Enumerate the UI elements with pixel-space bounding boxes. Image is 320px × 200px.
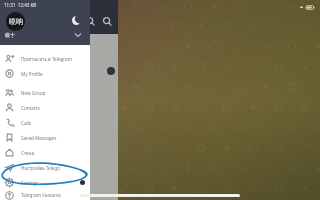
button[interactable]: Calls	[0, 115, 90, 130]
button[interactable]: Saved Messages	[0, 130, 90, 145]
staticText: 喨呐	[9, 17, 23, 26]
staticText: My Profile	[21, 71, 43, 77]
button[interactable]: Settings	[0, 175, 90, 190]
button[interactable]: My Profile	[0, 66, 90, 81]
button[interactable]: New message	[2, 156, 28, 182]
button[interactable]: Profile photo	[6, 12, 25, 31]
button[interactable]: Contacts	[0, 100, 90, 115]
staticText: Saved Messages	[21, 135, 57, 141]
staticText: 11:31 12:43 KB	[4, 2, 37, 8]
button[interactable]: Telegram Features	[0, 190, 90, 200]
staticText: Telegram Features	[21, 192, 61, 198]
button[interactable]: Настройка Telego	[0, 160, 90, 175]
staticText: Настройка Telego	[21, 165, 61, 171]
button[interactable]: Стена	[0, 145, 90, 160]
button[interactable]: Expand accounts	[71, 28, 85, 42]
staticText: 喨十	[5, 32, 15, 38]
staticText: Settings	[21, 180, 39, 186]
staticText: Calls	[21, 120, 32, 126]
button[interactable]: New Group	[0, 85, 90, 100]
staticText: Contacts	[21, 105, 40, 111]
button[interactable]: Пригласить в Telegram	[0, 51, 90, 66]
button[interactable]: Toggle night mode	[68, 12, 84, 28]
staticText: New Group	[21, 90, 46, 96]
staticText: Стена	[21, 150, 34, 156]
staticText: Пригласить в Telegram	[21, 56, 72, 62]
